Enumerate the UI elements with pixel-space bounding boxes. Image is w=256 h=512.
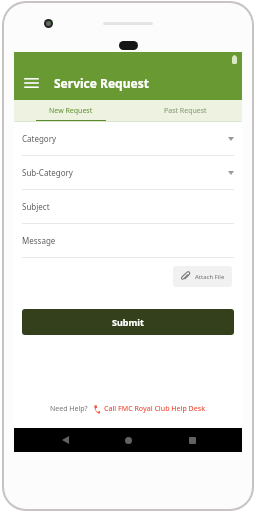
button[interactable]: New Request [14, 100, 128, 122]
button[interactable]: Sub-Category [14, 156, 242, 190]
button[interactable]: Call FMC Royal Club Help Desk [93, 404, 206, 414]
button[interactable]: Message [14, 224, 242, 258]
button[interactable]: Past Request [128, 100, 242, 122]
staticText: New Request [49, 106, 93, 116]
staticText: Service Request [54, 75, 149, 91]
staticText: Submit [112, 316, 144, 328]
staticText: Attach File [195, 273, 225, 281]
button[interactable]: Attach File [173, 266, 232, 287]
staticText: Sub-Category [22, 167, 73, 178]
button[interactable]: Back [52, 428, 78, 452]
staticText: Message [22, 235, 56, 246]
staticText: Subject [22, 201, 50, 212]
button[interactable]: Category [14, 122, 242, 156]
staticText: Category [22, 133, 57, 144]
button[interactable]: Home [115, 428, 141, 452]
button[interactable]: Open navigation menu [14, 66, 48, 100]
button[interactable]: Subject [14, 190, 242, 224]
button[interactable]: Recent apps [179, 428, 205, 452]
staticText: Past Request [164, 106, 207, 116]
staticText: Need Help? [50, 404, 88, 414]
staticText: Call FMC Royal Club Help Desk [104, 404, 206, 414]
button[interactable]: Submit [22, 309, 234, 335]
